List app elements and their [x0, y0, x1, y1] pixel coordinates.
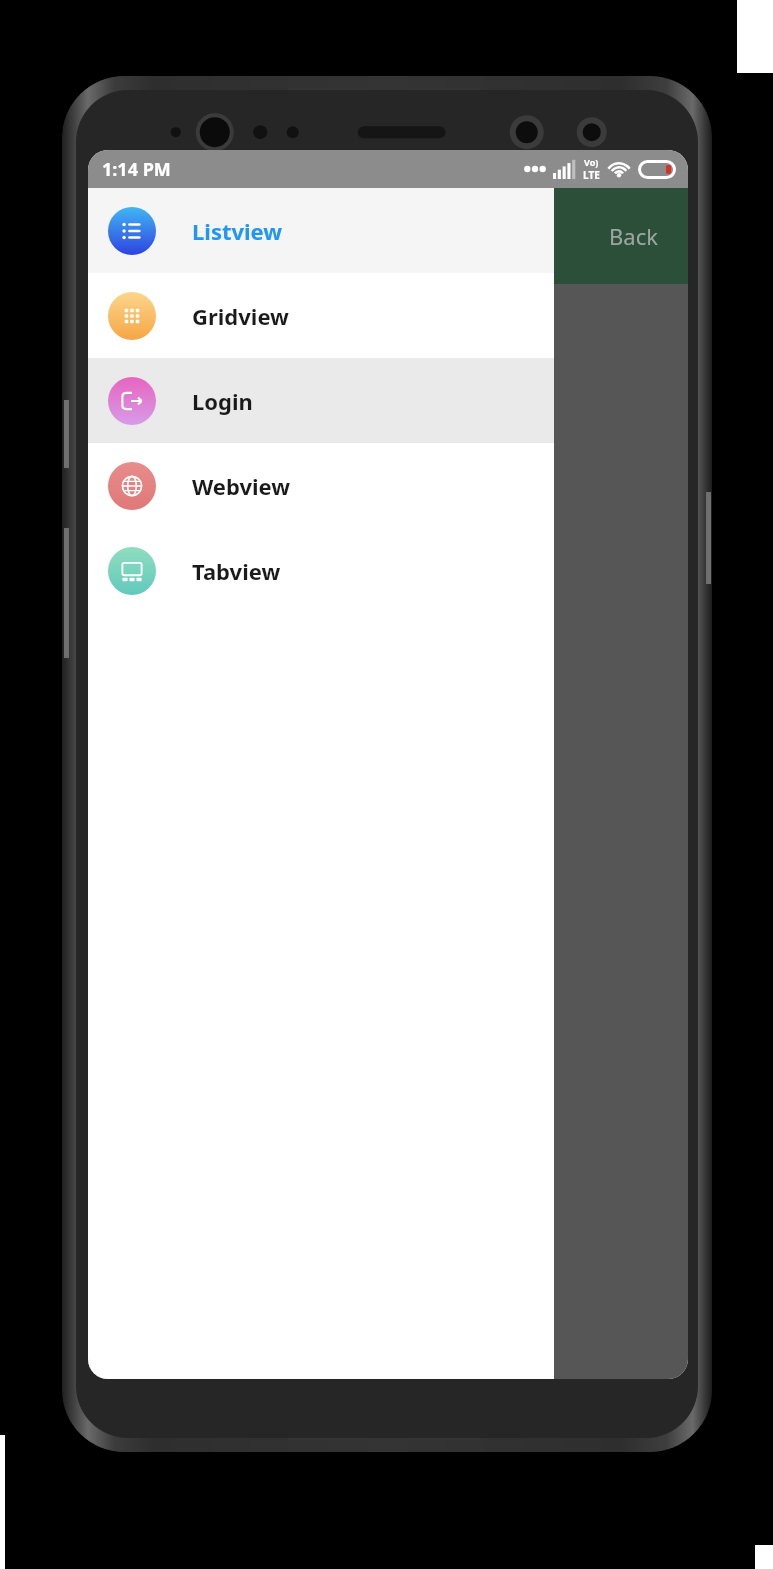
- button[interactable]: Back: [88, 188, 688, 284]
- staticText: Back: [609, 221, 658, 251]
- staticText: LTE: [583, 168, 600, 182]
- staticText: Listview: [192, 216, 283, 246]
- button[interactable]: Login: [88, 358, 554, 443]
- staticText: Vo): [584, 156, 599, 168]
- staticText: Gridview: [192, 301, 289, 331]
- button[interactable]: Webview: [88, 443, 554, 528]
- staticText: Login: [192, 386, 253, 416]
- staticText: 1:14 PM: [102, 157, 171, 182]
- button[interactable]: Listview: [88, 188, 554, 273]
- button[interactable]: Tabview: [88, 528, 554, 613]
- staticText: Tabview: [192, 556, 281, 586]
- staticText: Webview: [192, 471, 291, 501]
- button[interactable]: Gridview: [88, 273, 554, 358]
